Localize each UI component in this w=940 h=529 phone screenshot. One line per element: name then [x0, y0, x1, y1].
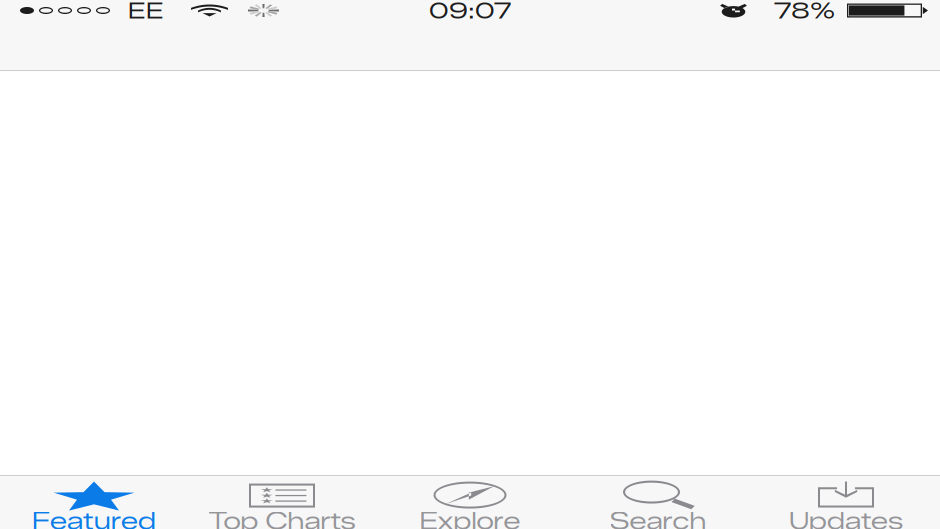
button[interactable]: Featured — [0, 475, 188, 529]
staticText: Featured — [32, 506, 156, 529]
staticText: EE — [128, 0, 164, 24]
staticText: Explore — [419, 506, 520, 529]
staticText: Updates — [789, 506, 903, 529]
staticText: 09:07 — [429, 0, 511, 24]
staticText: Top Charts — [208, 506, 355, 529]
staticText: 78% — [774, 0, 835, 24]
button[interactable]: Search — [564, 475, 752, 529]
button[interactable]: Explore — [376, 475, 564, 529]
button[interactable]: Updates — [752, 475, 940, 529]
button[interactable]: Top Charts — [188, 475, 376, 529]
staticText: Search — [609, 506, 706, 529]
